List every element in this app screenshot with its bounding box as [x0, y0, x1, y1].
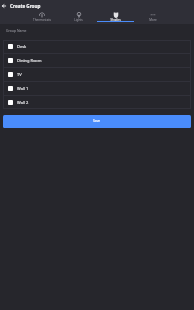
- button[interactable]: Desk: [3, 40, 191, 53]
- staticText: Group Name: [6, 28, 27, 33]
- staticText: More: [149, 18, 157, 22]
- staticText: TV: [17, 72, 22, 77]
- button[interactable]: Thermostats: [23, 12, 60, 24]
- staticText: Create Group: [10, 3, 41, 9]
- staticText: Dining Room: [17, 58, 42, 63]
- button[interactable]: Back: [0, 2, 8, 10]
- button[interactable]: Wall 2: [3, 96, 191, 109]
- button[interactable]: More: [134, 12, 171, 24]
- button[interactable]: Lights: [60, 12, 97, 24]
- button[interactable]: TV: [3, 68, 191, 81]
- button[interactable]: Wall 1: [3, 82, 191, 95]
- button[interactable]: Dining Room: [3, 54, 191, 67]
- staticText: Desk: [17, 44, 27, 49]
- staticText: Wall 1: [17, 86, 29, 91]
- staticText: Wall 2: [17, 100, 29, 105]
- staticText: Lights: [74, 18, 83, 22]
- button[interactable]: Save: [3, 115, 191, 128]
- button[interactable]: Shades: [97, 12, 134, 24]
- staticText: Shades: [110, 18, 121, 22]
- staticText: Save: [93, 118, 101, 122]
- staticText: Thermostats: [33, 18, 51, 22]
